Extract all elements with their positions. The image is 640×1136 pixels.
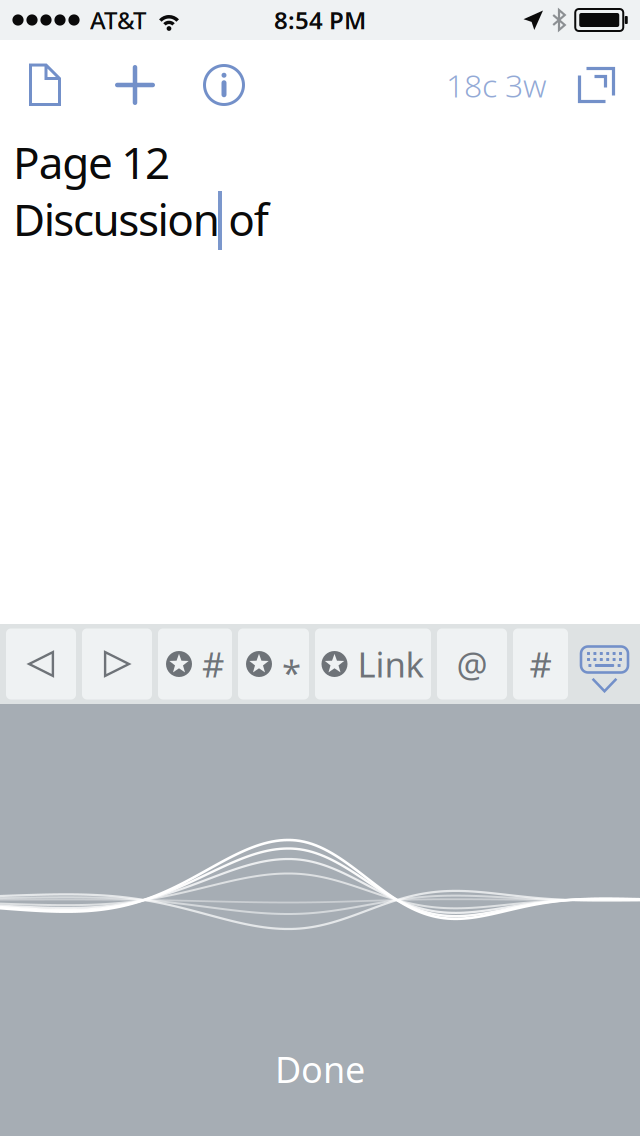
staticText: # <box>529 641 551 687</box>
button[interactable]: # <box>158 628 232 699</box>
button[interactable]: Hide keyboard <box>574 628 635 699</box>
button[interactable]: Done <box>210 1039 430 1099</box>
staticText: AT&T <box>90 4 146 36</box>
staticText: @ <box>456 641 487 687</box>
staticText: Discussion of <box>13 190 269 248</box>
staticText: 18c 3w <box>446 64 547 106</box>
button[interactable]: # <box>513 628 568 699</box>
button[interactable]: Pages <box>570 40 624 130</box>
staticText: Link <box>357 641 424 687</box>
button[interactable] <box>82 628 152 699</box>
staticText: * <box>282 649 301 695</box>
button[interactable]: @ <box>437 628 507 699</box>
button[interactable]: Documents <box>18 40 72 130</box>
button[interactable]: New note <box>108 40 162 130</box>
button[interactable]: Link <box>315 628 431 699</box>
button[interactable] <box>6 628 76 699</box>
button[interactable]: * <box>238 628 309 699</box>
staticText: Page 12 <box>13 133 170 191</box>
staticText: # <box>202 641 224 687</box>
staticText: Done <box>275 1045 365 1093</box>
staticText: 8:54 PM <box>274 4 366 36</box>
button[interactable]: Info <box>197 40 251 130</box>
